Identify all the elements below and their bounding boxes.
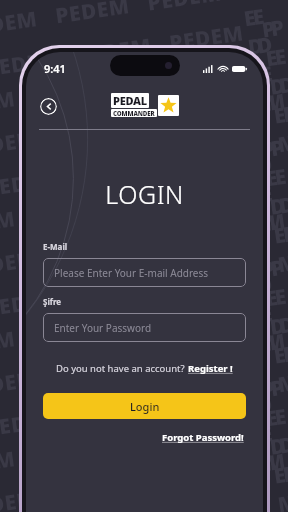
staticText: PEDEM	[0, 444, 18, 483]
staticText: PEDEM	[0, 204, 18, 243]
staticText: PEDEM	[123, 298, 202, 338]
staticText: PEDEM	[260, 15, 288, 159]
staticText: PEDEM	[31, 71, 110, 111]
staticText: PEDEM	[260, 135, 288, 279]
button[interactable]: Forgot Password!	[160, 429, 246, 446]
staticText: PEDEM	[53, 0, 132, 31]
staticText: PEDEM	[123, 58, 202, 98]
staticText: PEDEM	[238, 95, 267, 239]
staticText: PEDEM	[0, 4, 40, 43]
staticText: PEDEM	[238, 455, 267, 512]
staticText: PEDEM	[53, 111, 132, 151]
staticText: PEDEM	[238, 0, 267, 120]
staticText: PEDEM	[216, 295, 245, 439]
staticText: PEDEM	[145, 98, 224, 138]
staticText: PEDEM	[216, 55, 245, 199]
staticText: PEDEM	[0, 44, 62, 83]
staticText: LOGIN	[26, 177, 263, 211]
staticText: PEDEM	[75, 391, 154, 431]
button[interactable]: Login	[43, 393, 246, 419]
staticText: PEDEM	[75, 271, 154, 311]
staticText: 9:41	[44, 61, 66, 76]
staticText: PEDEM	[260, 255, 288, 399]
staticText: PEDEM	[238, 215, 267, 359]
staticText: PEDEM	[0, 244, 40, 283]
staticText: PEDEM	[216, 175, 245, 319]
staticText: PEDEM	[260, 375, 288, 512]
staticText: PEDEM	[145, 338, 224, 378]
staticText: E-Mail	[43, 241, 68, 252]
staticText: PEDEM	[123, 178, 202, 218]
staticText: PEDAL	[113, 93, 147, 108]
staticText: PEDEM	[0, 364, 40, 403]
staticText: PEDEM	[0, 484, 40, 512]
staticText: PEDEM	[0, 124, 40, 163]
staticText: PEDEM	[31, 311, 110, 351]
staticText: Şifre	[43, 296, 62, 307]
staticText: Login	[130, 399, 160, 414]
staticText: PEDEM	[145, 0, 224, 18]
button[interactable]: Enter Your Password	[43, 313, 246, 342]
staticText: PEDEM	[123, 418, 202, 458]
button[interactable]: Register !	[188, 362, 233, 375]
button[interactable]: Back	[40, 98, 57, 115]
staticText: PEDEM	[0, 404, 62, 443]
staticText: PEDEM	[167, 18, 246, 58]
staticText: PEDEM	[75, 31, 154, 71]
staticText: PEDEM	[53, 351, 132, 391]
staticText: PEDEM	[167, 258, 246, 298]
staticText: COMMANDER	[113, 109, 155, 117]
staticText: PEDEM	[0, 164, 62, 203]
staticText: PEDEM	[167, 378, 246, 418]
staticText: PEDEM	[238, 335, 267, 479]
button[interactable]: Please Enter Your E-mail Address	[43, 258, 246, 287]
staticText: Please Enter Your E-mail Address	[54, 266, 209, 280]
staticText: PEDEM	[53, 231, 132, 271]
staticText: PEDEM	[0, 84, 18, 123]
staticText: PEDEM	[31, 191, 110, 231]
staticText: Enter Your Password	[54, 321, 152, 335]
staticText: Do you not have an account?	[56, 362, 188, 375]
staticText: PEDEM	[216, 415, 245, 512]
staticText: PEDEM	[0, 324, 18, 363]
staticText: PEDEM	[75, 151, 154, 191]
staticText: PEDEM	[0, 284, 62, 323]
